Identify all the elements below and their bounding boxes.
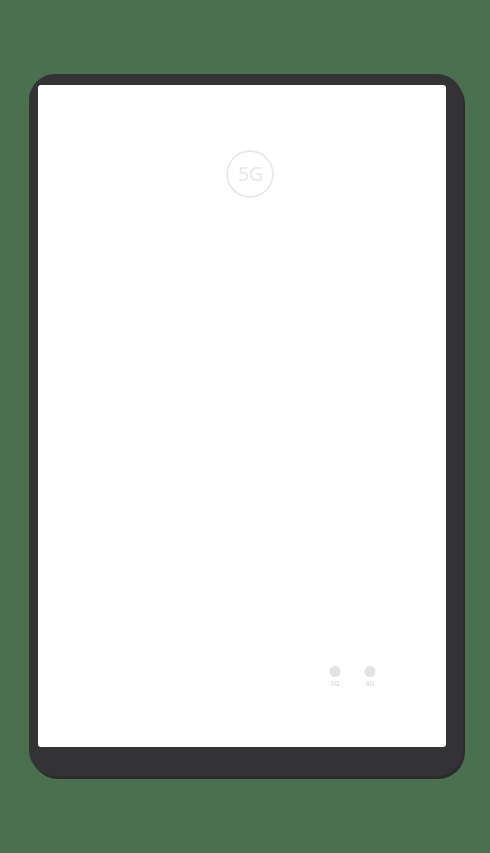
button[interactable]: 5G [324,665,346,689]
staticText: 5G [238,161,263,187]
staticText: 5G [330,679,340,689]
button[interactable]: 4G [359,665,381,689]
staticText: 4G [365,679,375,689]
button[interactable]: 5G network logo [226,150,274,198]
